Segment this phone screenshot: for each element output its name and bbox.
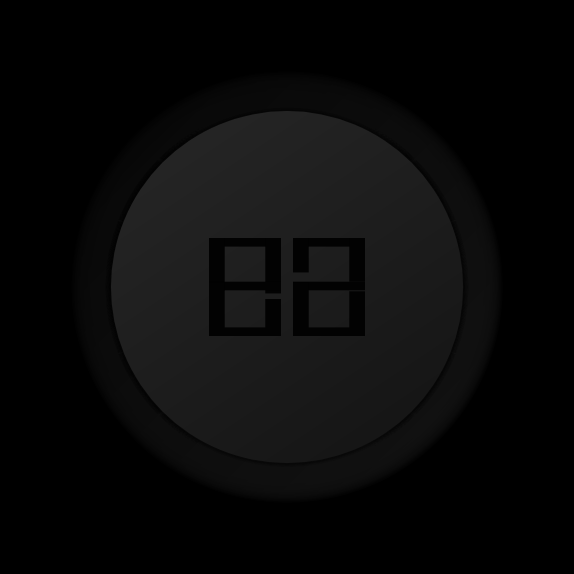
button[interactable]: Watch face, 8:8 <box>111 111 463 463</box>
